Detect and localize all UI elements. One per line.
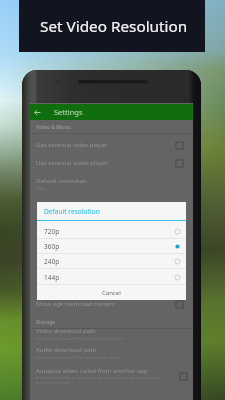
button[interactable]: 144p — [44, 270, 181, 285]
button[interactable]: Show age restricted content — [36, 297, 183, 311]
staticText: Autoplay when called from another app — [36, 367, 148, 375]
staticText: 360p — [44, 242, 60, 251]
staticText: Default resolution — [36, 177, 87, 185]
button[interactable]: Autoplay when called from another app — [36, 364, 187, 388]
staticText: Default resolution — [44, 207, 100, 216]
staticText: Set Video Resolution — [40, 16, 188, 37]
staticText: Video download path — [36, 327, 96, 335]
button[interactable]: Back — [30, 104, 193, 120]
button[interactable]: Audio download path — [36, 345, 187, 361]
staticText: /storage/emulated/0/Movies/NewPipe/video — [36, 336, 124, 342]
staticText: Video & Music — [36, 124, 71, 131]
button[interactable]: 720p — [44, 224, 181, 239]
staticText: Automatically play a video when an inten… — [36, 375, 160, 385]
button[interactable]: 360p — [44, 239, 181, 254]
staticText: /storage/emulated/0/Music/NewPipe/audio — [36, 355, 122, 361]
staticText: Audio download path — [36, 346, 97, 354]
button[interactable]: Back — [32, 107, 42, 117]
staticText: 240p — [44, 257, 60, 266]
staticText: 720p — [44, 227, 60, 236]
button[interactable]: Video download path — [36, 326, 187, 342]
button[interactable]: Use external audio player — [36, 156, 183, 170]
staticText: Use external video player — [36, 141, 108, 149]
staticText: Use external audio player — [36, 159, 108, 167]
button[interactable]: Cancel — [37, 286, 186, 300]
button[interactable]: Default resolution — [36, 176, 187, 192]
button[interactable]: Use external video player — [36, 138, 183, 152]
staticText: Cancel — [102, 289, 121, 297]
staticText: Settings — [54, 107, 83, 117]
staticText: Storage — [36, 319, 56, 326]
staticText: 360p — [36, 186, 46, 192]
staticText: 144p — [44, 273, 60, 282]
staticText: Show age restricted content — [36, 300, 115, 308]
button[interactable]: 240p — [44, 254, 181, 269]
